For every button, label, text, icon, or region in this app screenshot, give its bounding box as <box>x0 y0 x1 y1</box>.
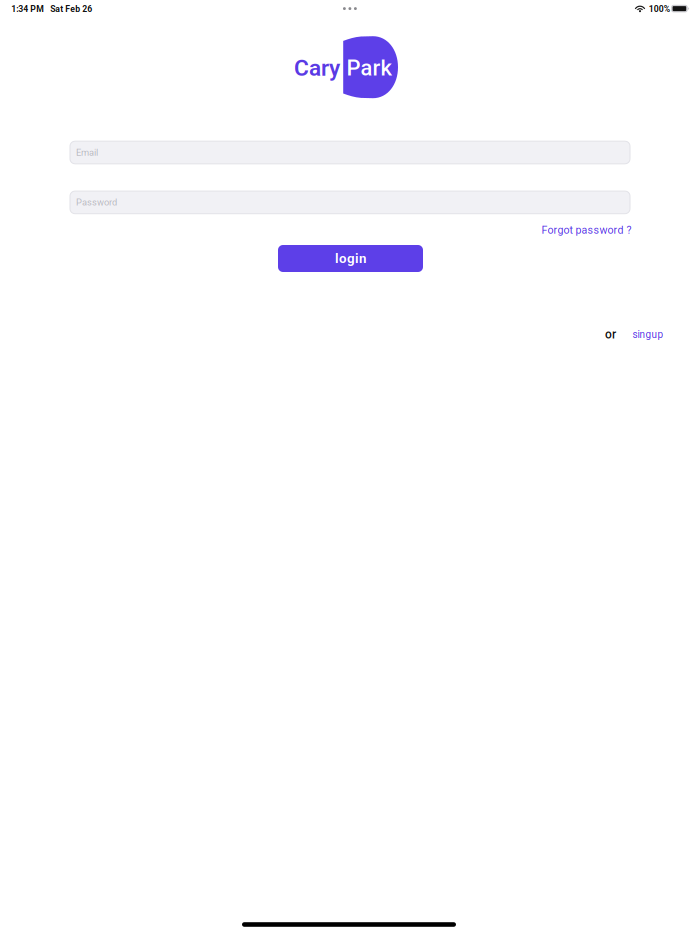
staticText: Park <box>346 55 391 81</box>
staticText: or <box>605 327 616 342</box>
button[interactable]: Forgot password ? <box>537 219 635 241</box>
staticText: login <box>335 251 366 266</box>
staticText: Sat Feb 26 <box>50 4 92 14</box>
staticText: 1:34 PM <box>11 4 44 14</box>
button[interactable]: login <box>278 245 423 272</box>
staticText: Email <box>76 147 98 158</box>
staticText: singup <box>632 329 663 340</box>
button[interactable]: Password <box>70 191 630 214</box>
staticText: Password <box>76 197 117 208</box>
button[interactable]: singup <box>627 324 668 345</box>
staticText: Forgot password ? <box>541 224 631 236</box>
button[interactable]: Email <box>70 141 630 164</box>
staticText: 100% <box>649 4 670 14</box>
staticText: Cary <box>294 55 340 81</box>
